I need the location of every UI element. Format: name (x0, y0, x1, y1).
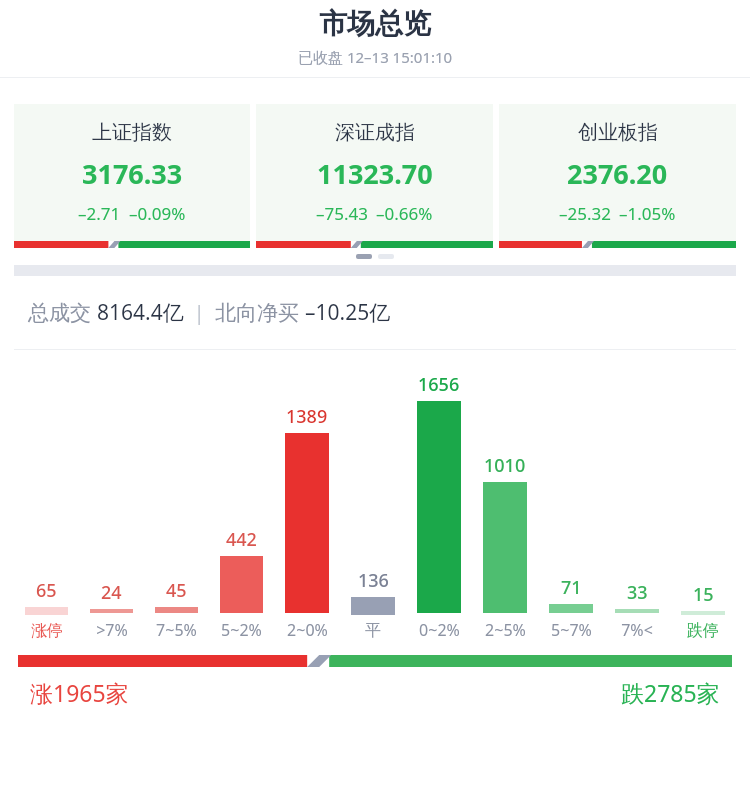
staticText: –10.25亿 (305, 298, 391, 327)
staticText: 65 (36, 578, 57, 603)
staticText: 5~2% (221, 619, 262, 641)
staticText: –0.66% (376, 202, 433, 225)
button[interactable]: 深证成指 (256, 104, 493, 248)
staticText: 24 (101, 580, 122, 605)
staticText: –25.32 (559, 202, 611, 225)
button[interactable]: 136 (340, 374, 406, 641)
staticText: –0.09% (129, 202, 186, 225)
staticText: 北向净买 (215, 298, 305, 327)
staticText: 跌停 (687, 621, 719, 641)
staticText: 创业板指 (578, 120, 658, 145)
staticText: 442 (226, 527, 257, 552)
staticText: >7% (96, 619, 128, 641)
staticText: 涨停 (31, 621, 63, 641)
staticText: 45 (166, 578, 187, 603)
staticText: 7%< (621, 619, 653, 641)
staticText: 2~5% (485, 619, 526, 641)
staticText: 1656 (418, 372, 460, 397)
staticText: 2376.20 (567, 155, 668, 192)
staticText: 2~0% (287, 619, 328, 641)
staticText: 总成交 (28, 298, 97, 327)
button[interactable]: 24 (79, 372, 144, 641)
button[interactable]: 45 (144, 372, 209, 641)
button[interactable]: 1389 (274, 372, 340, 641)
staticText: 市场总览 (319, 6, 431, 41)
button[interactable]: 442 (209, 372, 274, 641)
staticText: 15 (693, 582, 714, 607)
staticText: 涨1965家 (30, 677, 129, 708)
staticText: 1010 (484, 453, 526, 478)
staticText: 上证指数 (92, 120, 172, 145)
staticText: 5~7% (551, 619, 592, 641)
staticText: 深证成指 (335, 120, 415, 145)
button[interactable]: 1656 (406, 372, 472, 641)
button[interactable]: 上证指数 (14, 104, 250, 248)
button[interactable]: 71 (538, 372, 604, 641)
button[interactable]: 65 (14, 374, 79, 641)
staticText: –2.71 (78, 202, 121, 225)
staticText: 平 (365, 621, 381, 641)
button[interactable]: 15 (670, 374, 736, 641)
other: 涨跌比例 (18, 655, 732, 667)
staticText: 11323.70 (317, 155, 433, 192)
staticText: 1389 (286, 404, 328, 429)
staticText: 7~5% (156, 619, 197, 641)
staticText: 0~2% (419, 619, 460, 641)
button[interactable]: 创业板指 (499, 104, 736, 248)
staticText: | (184, 300, 215, 326)
staticText: 已收盘 12–13 15:01:10 (298, 47, 453, 67)
staticText: –1.05% (619, 202, 676, 225)
staticText: 33 (627, 580, 648, 605)
staticText: –75.43 (316, 202, 368, 225)
button[interactable]: 33 (604, 372, 670, 641)
staticText: 71 (561, 575, 582, 600)
button[interactable]: 1010 (472, 372, 538, 641)
staticText: 136 (358, 568, 389, 593)
staticText: 8164.4亿 (97, 298, 184, 327)
staticText: 3176.33 (82, 155, 183, 192)
staticText: 跌2785家 (621, 677, 720, 708)
